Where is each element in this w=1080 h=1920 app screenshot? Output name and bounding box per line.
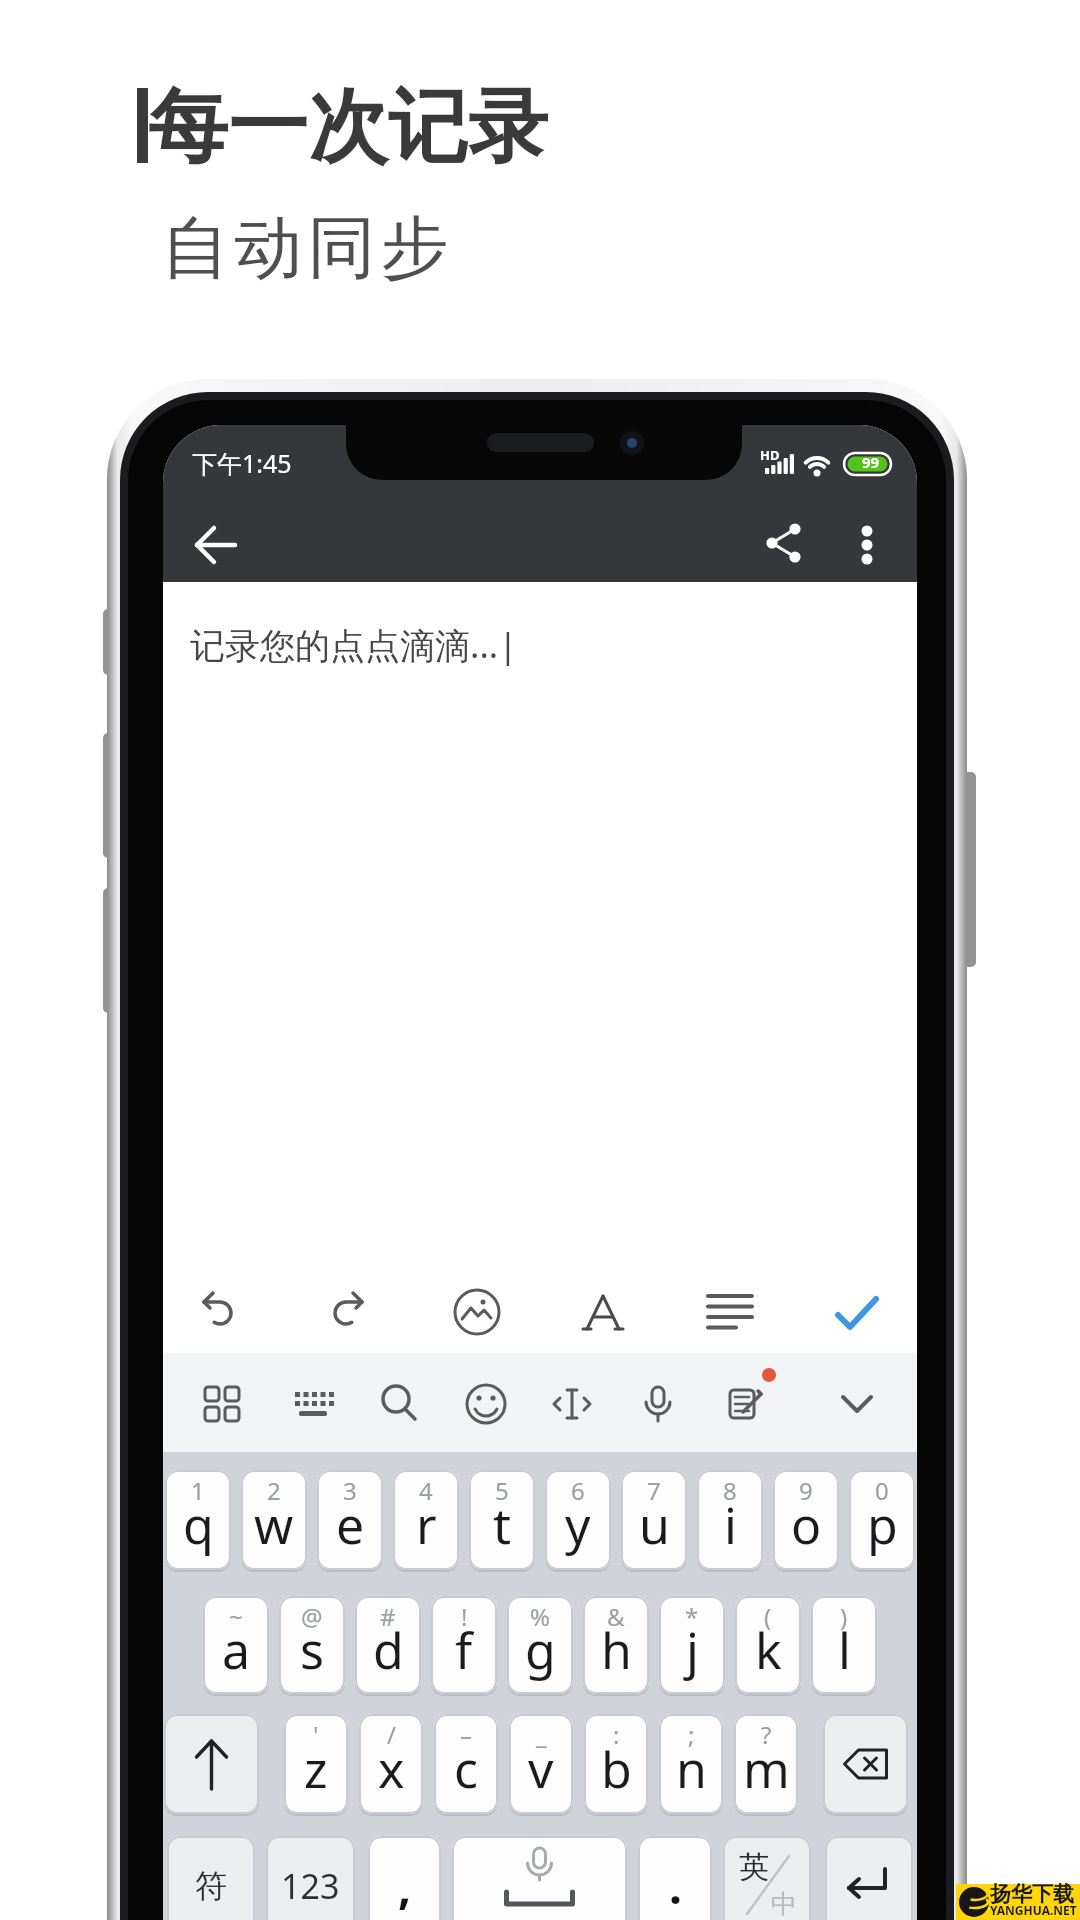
staticText: '	[313, 1718, 319, 1751]
button[interactable]: /	[359, 1714, 423, 1814]
staticText: q	[183, 1491, 214, 1559]
button[interactable]	[550, 1382, 594, 1426]
button[interactable]	[706, 1288, 754, 1336]
staticText: !	[461, 1600, 468, 1633]
button[interactable]: –	[434, 1714, 498, 1814]
button[interactable]	[164, 1714, 259, 1814]
staticText: p	[867, 1491, 898, 1559]
button[interactable]: 3	[317, 1470, 383, 1570]
staticText: n	[676, 1735, 707, 1803]
button[interactable]	[833, 1288, 881, 1336]
staticText: u	[639, 1491, 670, 1559]
button[interactable]: ?	[734, 1714, 798, 1814]
staticText: YANGHUA.NET	[990, 1902, 1077, 1918]
staticText: b	[601, 1735, 632, 1803]
button[interactable]	[453, 1288, 501, 1336]
button[interactable]	[825, 1836, 913, 1920]
button[interactable]: *	[659, 1596, 725, 1694]
staticText: e	[336, 1491, 365, 1559]
staticText: 6	[571, 1474, 585, 1507]
button[interactable]	[636, 1382, 680, 1426]
staticText: m	[743, 1735, 790, 1803]
button[interactable]	[291, 1382, 335, 1426]
button[interactable]: (	[735, 1596, 801, 1694]
button[interactable]: 7	[621, 1470, 687, 1570]
staticText: a	[222, 1616, 251, 1684]
staticText: _	[536, 1718, 547, 1751]
button[interactable]: _	[509, 1714, 573, 1814]
button[interactable]: :	[584, 1714, 648, 1814]
staticText: %	[530, 1600, 550, 1633]
staticText: g	[525, 1616, 556, 1684]
staticText: v	[528, 1735, 554, 1803]
staticText: c	[454, 1735, 478, 1803]
button[interactable]: )	[811, 1596, 877, 1694]
button[interactable]: !	[431, 1596, 497, 1694]
button[interactable]: .	[638, 1836, 712, 1920]
staticText: ;	[688, 1718, 695, 1751]
button[interactable]: %	[507, 1596, 573, 1694]
staticText: ,	[398, 1855, 412, 1918]
button[interactable]	[762, 521, 806, 565]
button[interactable]	[194, 523, 238, 567]
button[interactable]	[723, 1382, 767, 1426]
button[interactable]	[823, 1714, 908, 1814]
staticText: x	[378, 1735, 405, 1803]
staticText: f	[455, 1616, 473, 1684]
staticText: r	[416, 1491, 437, 1559]
button[interactable]: 8	[697, 1470, 763, 1570]
staticText: .	[669, 1855, 682, 1918]
button[interactable]: #	[355, 1596, 421, 1694]
button[interactable]: ,	[368, 1836, 441, 1920]
staticText: l	[838, 1616, 851, 1684]
staticText: 英	[739, 1848, 769, 1886]
button[interactable]	[196, 1288, 244, 1336]
button[interactable]	[579, 1288, 627, 1336]
staticText: @	[301, 1600, 323, 1633]
staticText: 1	[191, 1474, 205, 1507]
staticText: 3	[343, 1474, 357, 1507]
button[interactable]: 9	[773, 1470, 839, 1570]
button[interactable]: 英	[723, 1836, 811, 1920]
button[interactable]: ;	[659, 1714, 723, 1814]
button[interactable]: 符	[167, 1836, 255, 1920]
button[interactable]: 6	[545, 1470, 611, 1570]
staticText: 123	[281, 1863, 340, 1909]
staticText: 记录您的点点滴滴...|	[190, 621, 518, 669]
button[interactable]: 123	[266, 1836, 355, 1920]
button[interactable]: 4	[393, 1470, 459, 1570]
button[interactable]	[377, 1382, 421, 1426]
button[interactable]	[835, 1382, 879, 1426]
staticText: j	[686, 1616, 699, 1684]
staticText: 2	[267, 1474, 281, 1507]
staticText: 0	[875, 1474, 889, 1507]
button[interactable]	[452, 1836, 627, 1920]
button[interactable]: '	[284, 1714, 348, 1814]
staticText: :	[613, 1718, 620, 1751]
staticText: )	[840, 1600, 848, 1633]
button[interactable]: &	[583, 1596, 649, 1694]
button[interactable]	[200, 1382, 244, 1426]
button[interactable]: 5	[469, 1470, 535, 1570]
button[interactable]	[464, 1382, 508, 1426]
button[interactable]: @	[279, 1596, 345, 1694]
staticText: (	[764, 1600, 772, 1633]
staticText: t	[493, 1491, 512, 1559]
staticText: 8	[723, 1474, 737, 1507]
button[interactable]	[845, 523, 889, 567]
staticText: k	[755, 1616, 782, 1684]
staticText: 下午1:45	[192, 446, 292, 480]
staticText: i	[724, 1491, 737, 1559]
staticText: &	[607, 1600, 625, 1633]
staticText: #	[380, 1600, 396, 1633]
button[interactable]: 2	[241, 1470, 307, 1570]
button[interactable]: 1	[165, 1470, 231, 1570]
staticText: –	[460, 1718, 472, 1751]
button[interactable]: ~	[203, 1596, 269, 1694]
button[interactable]: 0	[849, 1470, 915, 1570]
staticText: y	[565, 1491, 591, 1559]
staticText: z	[304, 1735, 328, 1803]
button[interactable]	[322, 1288, 370, 1336]
staticText: 每一次记录	[148, 77, 548, 178]
staticText: HD	[760, 446, 780, 464]
